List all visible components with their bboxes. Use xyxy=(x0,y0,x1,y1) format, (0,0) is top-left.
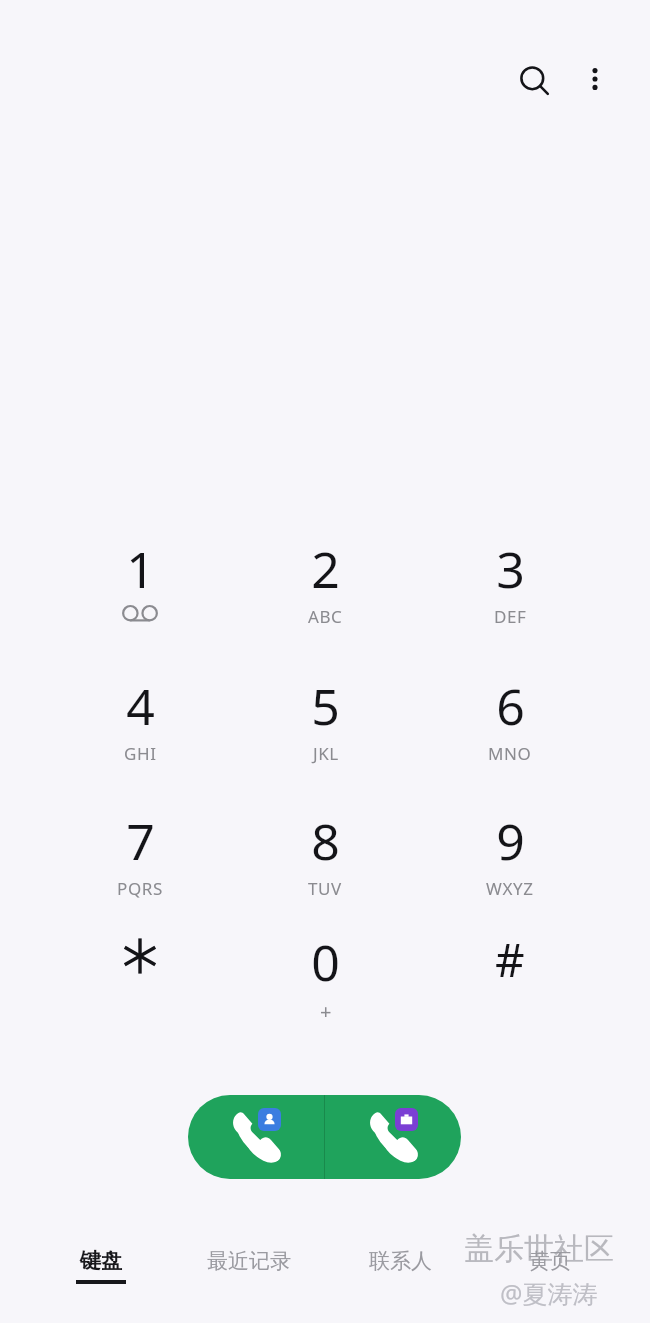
button[interactable]: 黄页 xyxy=(485,1248,615,1310)
staticText: 6 xyxy=(496,672,525,740)
staticText: 最近记录 xyxy=(207,1248,291,1274)
staticText: 2 xyxy=(311,535,340,603)
staticText: 7 xyxy=(126,807,155,875)
staticText: 联系人 xyxy=(369,1248,432,1274)
staticText: JKL xyxy=(313,742,339,765)
button[interactable]: 3 xyxy=(435,535,585,655)
staticText: MNO xyxy=(488,742,532,765)
staticText: 3 xyxy=(496,535,525,603)
staticText: 键盘 xyxy=(80,1248,122,1274)
staticText: 黄页 xyxy=(529,1248,571,1274)
button[interactable]: 6 xyxy=(435,672,585,792)
button[interactable] xyxy=(65,928,215,1048)
staticText: 1 xyxy=(126,535,155,603)
button[interactable]: # xyxy=(435,928,585,1048)
staticText: 0 xyxy=(311,928,340,996)
staticText: PQRS xyxy=(117,877,163,900)
button[interactable]: 8 xyxy=(250,807,400,927)
staticText: @夏涛涛 xyxy=(500,1276,598,1310)
button[interactable]: More options xyxy=(572,56,618,102)
staticText: DEF xyxy=(494,605,527,628)
staticText: WXYZ xyxy=(486,877,534,900)
staticText: 5 xyxy=(311,672,340,740)
staticText: 8 xyxy=(311,807,340,875)
button[interactable]: 0 xyxy=(250,928,400,1048)
button[interactable]: Search xyxy=(510,56,560,106)
button[interactable]: Call work xyxy=(325,1095,461,1179)
button[interactable]: 键盘 xyxy=(36,1248,166,1310)
staticText: # xyxy=(495,928,525,991)
staticText: + xyxy=(320,998,332,1025)
button[interactable]: 7 xyxy=(65,807,215,927)
button[interactable]: Call personal xyxy=(188,1095,324,1179)
staticText: TUV xyxy=(308,877,342,900)
button[interactable]: 9 xyxy=(435,807,585,927)
button[interactable]: 最近记录 xyxy=(184,1248,314,1310)
button[interactable]: 5 xyxy=(250,672,400,792)
staticText: ABC xyxy=(308,605,343,628)
button[interactable]: 联系人 xyxy=(335,1248,465,1310)
button[interactable]: 4 xyxy=(65,672,215,792)
staticText: 9 xyxy=(496,807,525,875)
staticText: GHI xyxy=(124,742,157,765)
button[interactable]: 2 xyxy=(250,535,400,655)
staticText: 4 xyxy=(126,672,155,740)
button[interactable]: 1 xyxy=(65,535,215,655)
staticText: 盖乐世社区 xyxy=(464,1230,614,1268)
